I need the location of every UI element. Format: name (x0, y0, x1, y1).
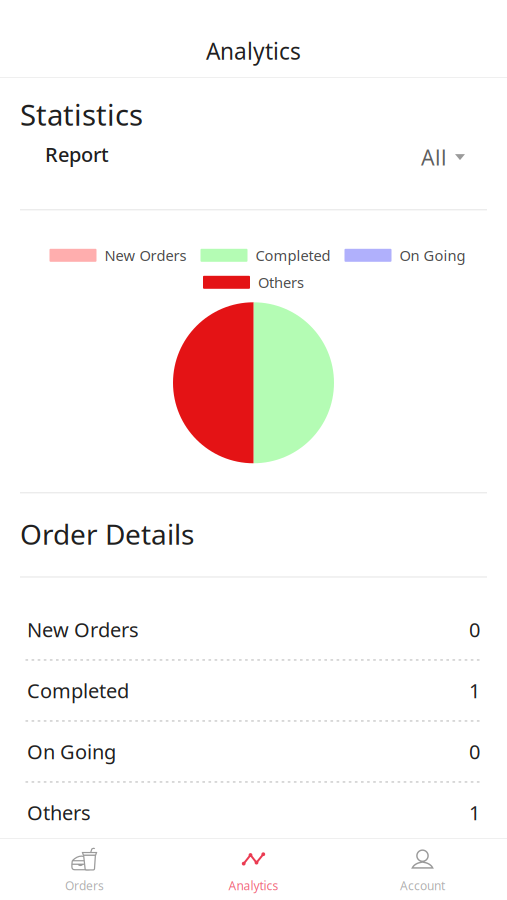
staticText: Completed (255, 245, 330, 265)
staticText: New Orders (27, 616, 139, 643)
staticText: On Going (27, 738, 116, 765)
staticText: Statistics (20, 95, 143, 134)
staticText: Others (258, 272, 304, 292)
staticText: Report (45, 141, 109, 167)
staticText: Analytics (206, 36, 301, 66)
staticText: Completed (27, 677, 129, 704)
staticText: Orders (65, 877, 104, 893)
button[interactable]: Account (338, 839, 507, 900)
staticText: Others (27, 799, 91, 826)
staticText: On Going (399, 245, 465, 265)
button[interactable]: Others (0, 790, 507, 834)
staticText: Analytics (228, 877, 278, 893)
staticText: All (421, 143, 447, 171)
staticText: 1 (469, 799, 480, 826)
staticText: 0 (469, 616, 480, 643)
button[interactable]: Completed (0, 668, 507, 712)
staticText: New Orders (104, 245, 186, 265)
button[interactable]: All (421, 140, 465, 168)
staticText: Account (400, 877, 445, 893)
button[interactable]: On Going (0, 729, 507, 773)
staticText: Order Details (20, 515, 194, 552)
button[interactable]: New Orders (0, 607, 507, 651)
button[interactable]: Orders (0, 839, 169, 900)
staticText: 1 (469, 677, 480, 704)
staticText: 0 (469, 738, 480, 765)
button[interactable]: Analytics (169, 839, 338, 900)
